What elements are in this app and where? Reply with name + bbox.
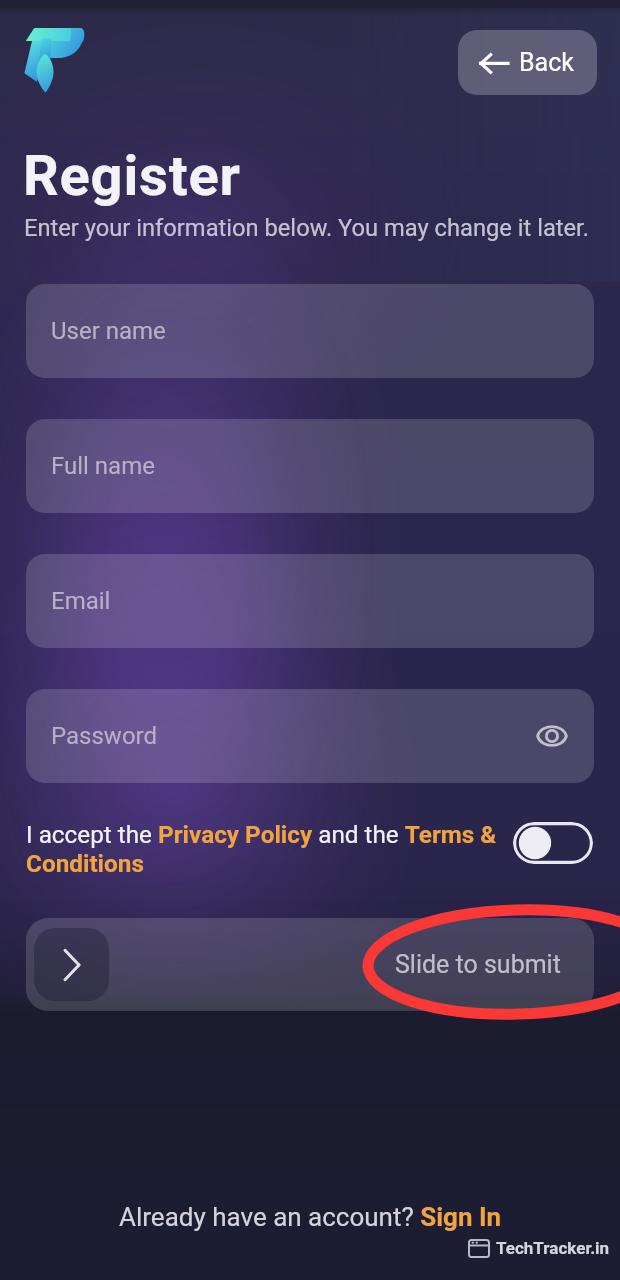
button[interactable]: Accept privacy policy and terms (513, 822, 593, 864)
button[interactable]: User name (26, 284, 594, 378)
staticText: I accept the Privacy Policy and the Term… (26, 820, 502, 878)
staticText: Register (23, 143, 241, 209)
other: App logo (22, 20, 92, 96)
button[interactable]: Password (26, 689, 594, 783)
button[interactable]: Email (26, 554, 594, 648)
staticText: Enter your information below. You may ch… (24, 214, 589, 242)
staticText: Email (51, 587, 111, 615)
button[interactable]: Full name (26, 419, 594, 513)
staticText: User name (51, 317, 166, 345)
staticText: Full name (51, 452, 155, 480)
staticText: TechTracker.in (496, 1238, 610, 1258)
staticText: Back (519, 48, 574, 77)
staticText: Password (51, 722, 158, 750)
button[interactable]: Already have an account? Sign In (119, 1202, 502, 1232)
staticText: Slide to submit (395, 950, 561, 979)
button[interactable]: Back (458, 30, 597, 95)
other: Show password (536, 722, 568, 750)
button[interactable]: Slide to submit (26, 918, 594, 1011)
